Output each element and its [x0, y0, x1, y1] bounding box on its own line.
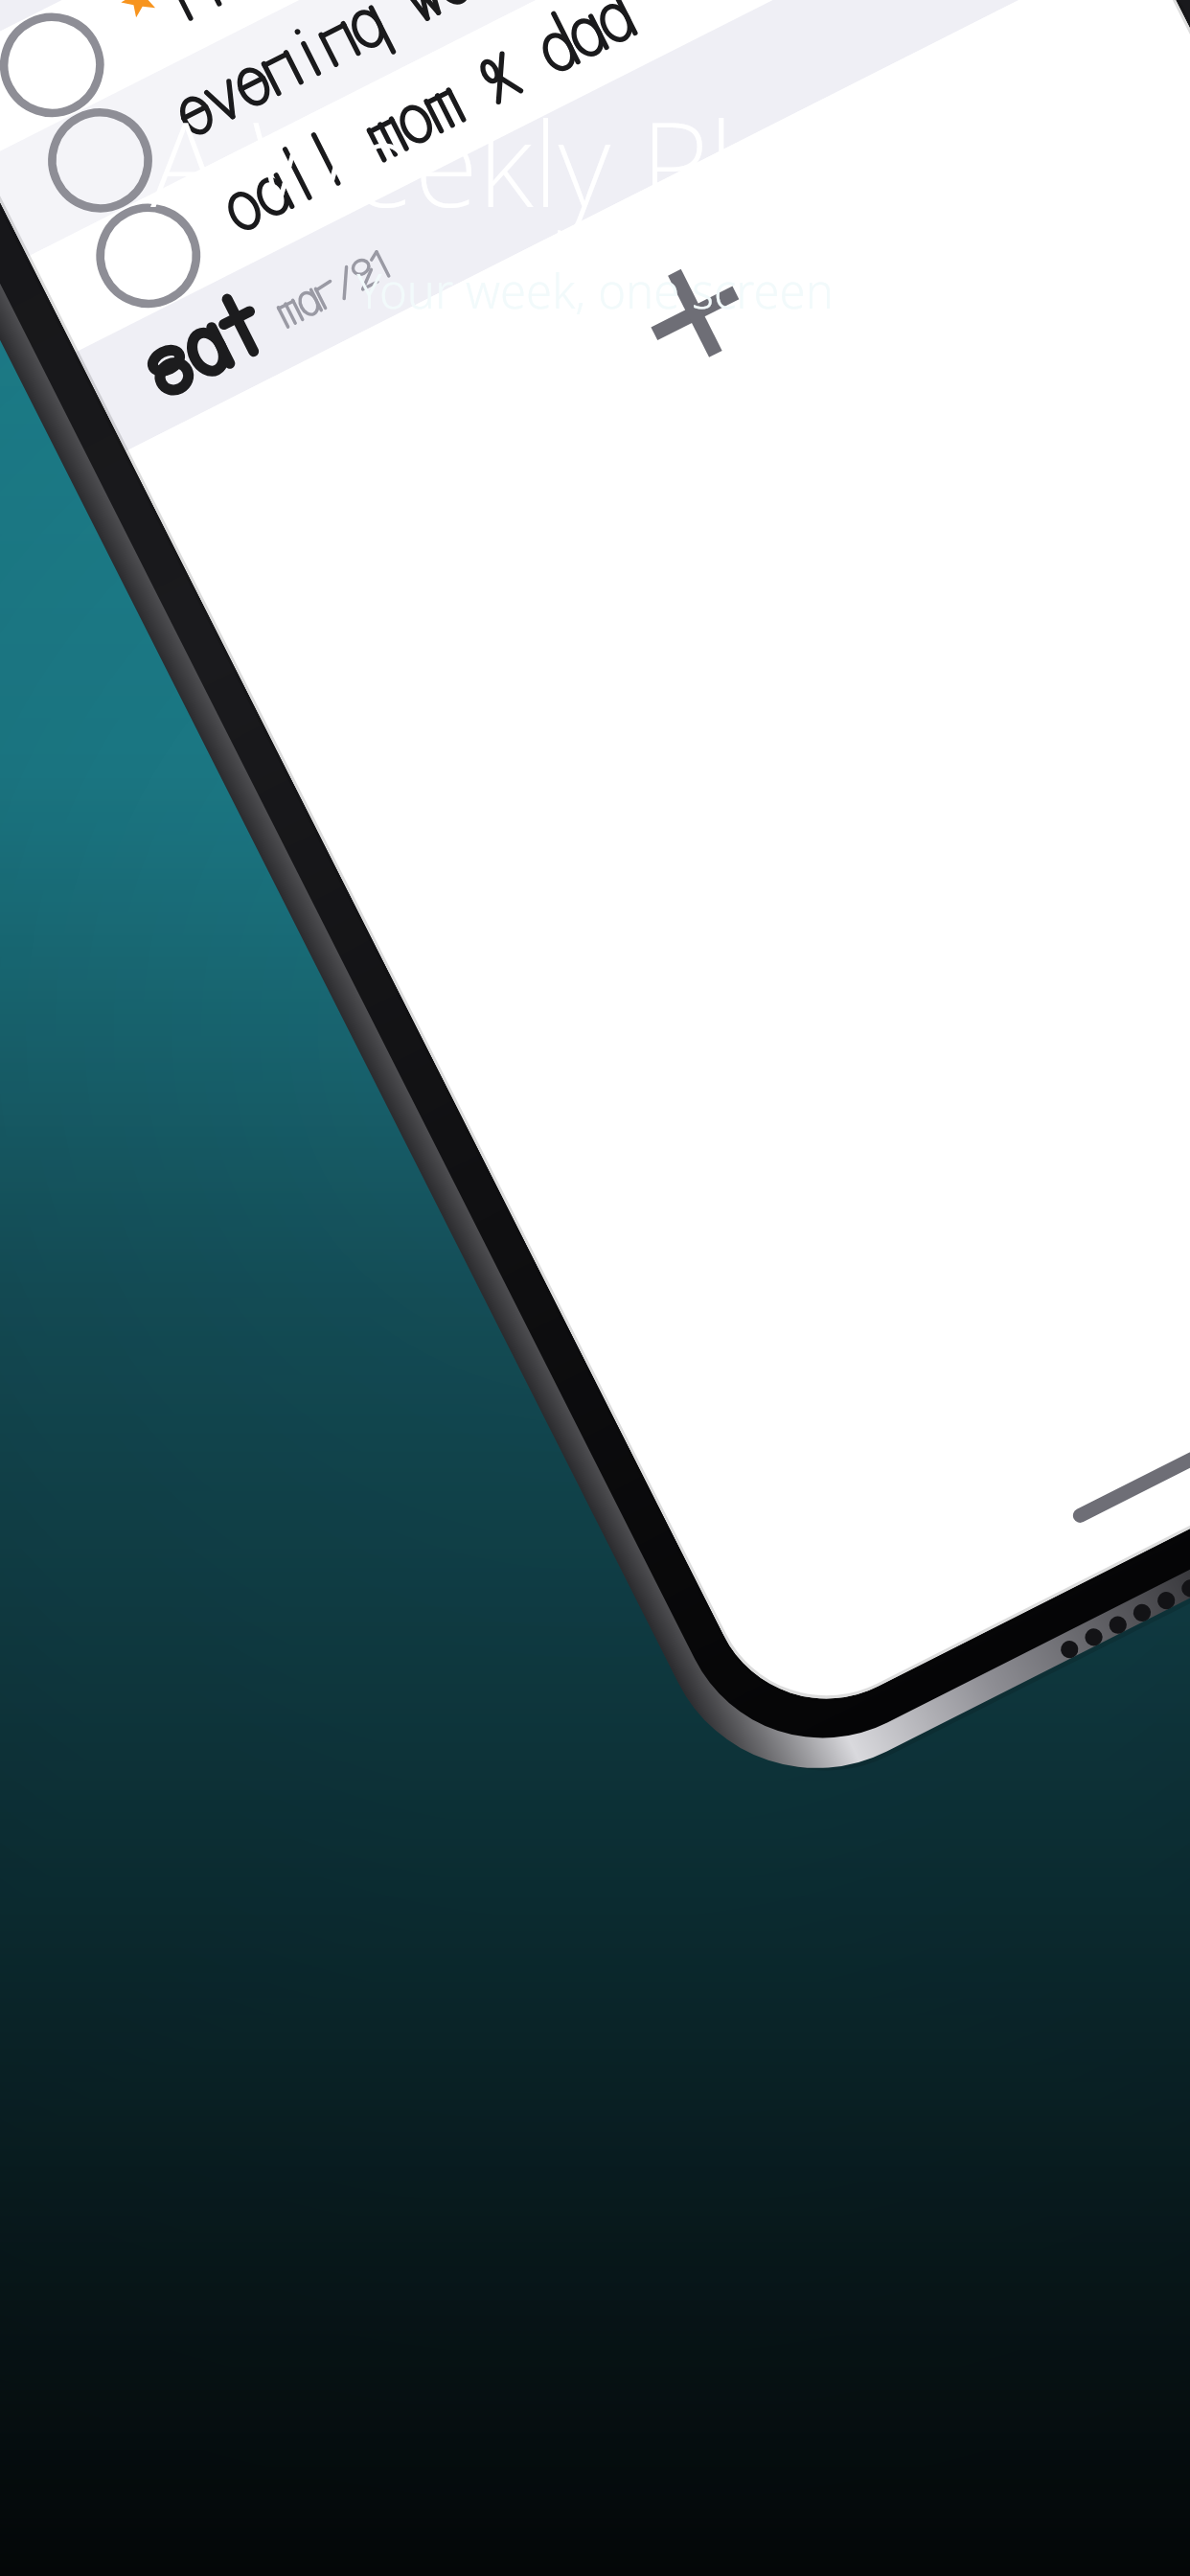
button[interactable]: App preview: [0, 0, 1190, 1]
staticText: A Weekly Planner: [150, 82, 1040, 241]
staticText: Your week, one screen: [356, 259, 834, 323]
